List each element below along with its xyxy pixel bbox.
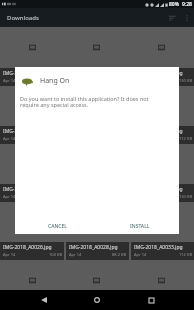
staticText: 130 KB bbox=[179, 78, 192, 83]
staticText: IMG-2018_A0024.jpg bbox=[3, 186, 52, 193]
staticText: IMG-2018_A0025.jpg bbox=[134, 186, 183, 193]
staticText: Apr 14 bbox=[69, 252, 82, 257]
staticText: 96.75 KB bbox=[45, 78, 62, 83]
staticText: 88.2 KB bbox=[112, 252, 127, 257]
staticText: 112 KB bbox=[179, 136, 192, 141]
staticText: CANCEL bbox=[48, 223, 67, 230]
button[interactable]: Recent apps bbox=[141, 290, 161, 310]
staticText: Apr 14 bbox=[3, 252, 16, 257]
button[interactable]: INSTALL bbox=[125, 219, 155, 234]
button[interactable]: More options bbox=[180, 11, 193, 24]
staticText: Apr 14 bbox=[3, 136, 16, 141]
button[interactable]: Back bbox=[34, 290, 54, 310]
button[interactable]: Home bbox=[87, 290, 107, 310]
button[interactable]: Sort bbox=[165, 10, 180, 25]
staticText: Downloads bbox=[7, 14, 39, 22]
staticText: IMG-2018_A0033.jpg bbox=[134, 244, 183, 251]
staticText: Hang On bbox=[40, 76, 70, 86]
staticText: IMG-2018_A0023.jpg bbox=[134, 128, 183, 135]
staticText: IMG-2018_A0039.jpg bbox=[69, 302, 118, 309]
staticText: IMG-2018_A0041.jpg bbox=[134, 302, 183, 309]
staticText: Apr 14 bbox=[134, 252, 147, 257]
staticText: 104 KB bbox=[49, 252, 62, 257]
staticText: 9:28 bbox=[182, 1, 192, 8]
staticText: 112 KB bbox=[179, 252, 192, 257]
staticText: IMG-2018_A0012.jpg bbox=[3, 70, 52, 77]
staticText: IMG-2018_A0026.jpg bbox=[3, 244, 52, 251]
staticText: Do you want to install this application?… bbox=[20, 95, 158, 109]
staticText: IMG-2018_A0036.jpg bbox=[3, 302, 52, 309]
staticText: Apr 14 bbox=[3, 194, 16, 199]
staticText: IMG-2018_A0018.jpg bbox=[134, 70, 183, 77]
button[interactable]: CANCEL bbox=[43, 219, 72, 234]
staticText: IMG-2018_A0020.jpg bbox=[3, 128, 52, 135]
staticText: IMG-2018_A0028.jpg bbox=[69, 244, 118, 251]
staticText: 130 KB bbox=[179, 194, 192, 199]
staticText: Apr 14 bbox=[3, 78, 16, 83]
staticText: INSTALL bbox=[130, 223, 150, 230]
staticText: 80% bbox=[169, 1, 179, 8]
